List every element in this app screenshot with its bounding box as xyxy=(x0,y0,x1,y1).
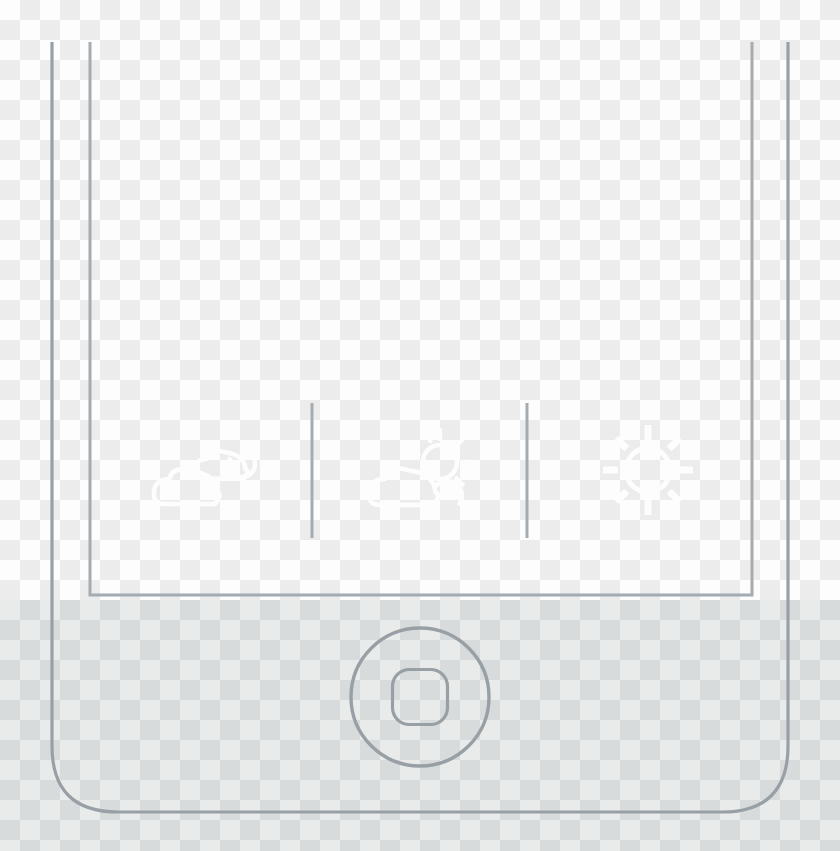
button[interactable]: Weather icon sheet on phone frame xyxy=(0,0,840,851)
